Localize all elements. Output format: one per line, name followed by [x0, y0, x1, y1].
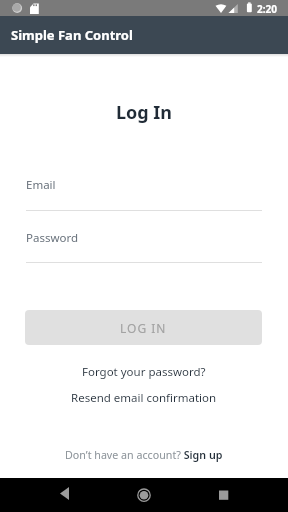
staticText: Don’t have an account? Sign up: [65, 448, 223, 463]
staticText: Forgot your password?: [82, 364, 206, 380]
staticText: Resend email confirmation: [71, 390, 217, 406]
staticText: Email: [26, 177, 56, 193]
staticText: Simple Fan Control: [11, 26, 133, 44]
button[interactable]: Resend email confirmation: [71, 390, 217, 406]
staticText: Log In: [116, 100, 173, 125]
button[interactable]: [130, 481, 158, 509]
button[interactable]: [209, 481, 237, 509]
staticText: 2:20: [257, 2, 277, 16]
button[interactable]: Forgot your password?: [82, 364, 206, 380]
button[interactable]: LOG IN: [25, 310, 262, 345]
button[interactable]: [50, 481, 78, 509]
button[interactable]: Don’t have an account? Sign up: [65, 448, 223, 463]
staticText: Password: [26, 230, 79, 246]
staticText: LOG IN: [120, 320, 167, 336]
